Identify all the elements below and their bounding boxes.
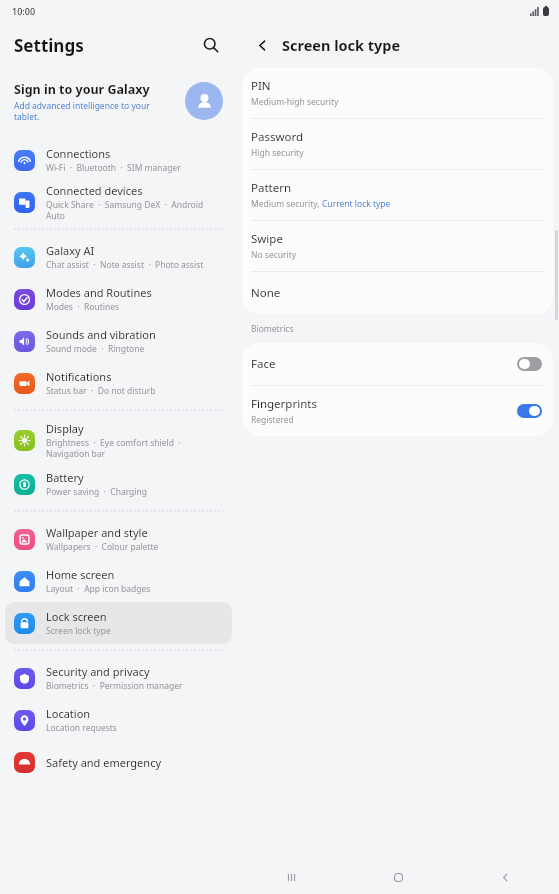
staticText: Settings [14, 34, 84, 57]
staticText: Fingerprints [251, 396, 317, 412]
staticText: Brightness · Eye comfort shield · Naviga… [46, 437, 224, 459]
button[interactable]: Connections [5, 139, 232, 181]
button[interactable]: Lock screen [5, 602, 232, 644]
staticText: Biometrics · Permission manager [46, 680, 183, 692]
staticText: Sign in to your Galaxy [14, 81, 150, 98]
staticText: Sounds and vibration [46, 327, 156, 342]
button[interactable]: Fingerprints [242, 386, 553, 436]
staticText: Current lock type [322, 198, 391, 210]
button[interactable]: Location [5, 699, 232, 741]
button[interactable]: Recents [237, 860, 345, 894]
button[interactable]: Sign in to your Galaxy [0, 68, 237, 134]
button[interactable]: Face [242, 343, 553, 385]
button[interactable]: Security and privacy [5, 657, 232, 699]
button[interactable]: PIN [242, 68, 553, 118]
staticText: Face [251, 356, 276, 372]
staticText: Registered [251, 414, 294, 426]
staticText: Add advanced intelligence to your tablet… [14, 100, 175, 122]
button[interactable]: Galaxy AI [5, 236, 232, 278]
staticText: Layout · App icon badges [46, 583, 151, 595]
button[interactable]: Display [5, 417, 232, 463]
button[interactable]: Connected devices [5, 181, 232, 223]
staticText: Biometrics [251, 323, 294, 335]
staticText: Modes · Routines [46, 301, 120, 313]
staticText: Modes and Routines [46, 285, 152, 300]
button[interactable]: Search [195, 29, 227, 61]
staticText: Location requests [46, 722, 117, 734]
staticText: Chat assist · Note assist · Photo assist [46, 259, 204, 271]
staticText: No security [251, 249, 297, 261]
staticText: Password [251, 129, 304, 145]
staticText: Connected devices [46, 183, 143, 198]
button[interactable] [517, 404, 542, 418]
staticText: Home screen [46, 567, 115, 582]
button[interactable] [517, 357, 542, 371]
staticText: None [251, 285, 281, 301]
button[interactable]: Pattern [242, 170, 553, 220]
button[interactable]: Battery [5, 463, 232, 505]
button[interactable]: Back [248, 31, 276, 59]
staticText: Power saving · Charging [46, 486, 147, 498]
staticText: Galaxy AI [46, 243, 95, 258]
staticText: PIN [251, 78, 271, 94]
button[interactable]: Password [242, 119, 553, 169]
staticText: Notifications [46, 369, 112, 384]
staticText: Lock screen [46, 609, 107, 624]
staticText: Swipe [251, 231, 283, 247]
staticText: High security [251, 147, 304, 159]
staticText: Safety and emergency [46, 755, 162, 770]
staticText: Sound mode · Ringtone [46, 343, 145, 355]
staticText: Display [46, 421, 84, 436]
button[interactable]: Modes and Routines [5, 278, 232, 320]
staticText: Wallpapers · Colour palette [46, 541, 159, 553]
staticText: Connections [46, 146, 111, 161]
button[interactable]: Safety and emergency [5, 741, 232, 783]
staticText: 10:00 [12, 5, 36, 17]
staticText: Pattern [251, 180, 292, 196]
button[interactable]: Sounds and vibration [5, 320, 232, 362]
staticText: Location [46, 706, 91, 721]
staticText: Medium security, [251, 198, 322, 210]
button[interactable]: Home [345, 860, 452, 894]
button[interactable]: None [242, 272, 553, 314]
staticText: Battery [46, 470, 84, 485]
staticText: Wi-Fi · Bluetooth · SIM manager [46, 162, 181, 174]
staticText: Screen lock type [282, 35, 401, 55]
button[interactable]: Swipe [242, 221, 553, 271]
staticText: Wallpaper and style [46, 525, 148, 540]
staticText: Quick Share · Samsung DeX · Android Auto [46, 199, 224, 221]
button[interactable]: Notifications [5, 362, 232, 404]
button[interactable]: Home screen [5, 560, 232, 602]
staticText: Screen lock type [46, 625, 111, 637]
button[interactable]: Wallpaper and style [5, 518, 232, 560]
staticText: Medium-high security [251, 96, 339, 108]
staticText: Status bar · Do not disturb [46, 385, 156, 397]
button[interactable]: Back [452, 860, 559, 894]
staticText: Security and privacy [46, 664, 150, 679]
